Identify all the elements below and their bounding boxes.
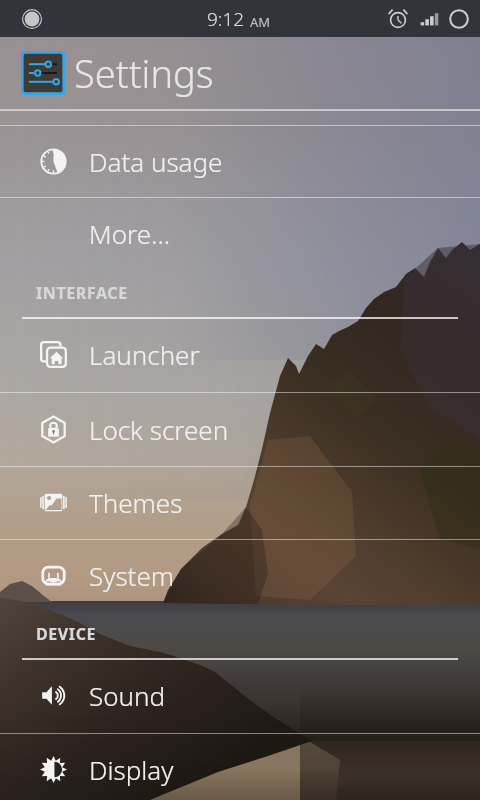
- staticText: Settings: [74, 47, 214, 99]
- button[interactable]: Lock screen: [0, 392, 480, 466]
- button[interactable]: System: [0, 539, 480, 612]
- staticText: Sound: [89, 678, 166, 713]
- button[interactable]: Data usage: [0, 125, 480, 198]
- staticText: INTERFACE: [36, 282, 128, 304]
- staticText: Launcher: [89, 337, 200, 372]
- button[interactable]: More...: [0, 197, 480, 270]
- staticText: AM: [250, 13, 271, 31]
- staticText: System: [89, 558, 174, 593]
- staticText: 9:12: [207, 6, 245, 32]
- button[interactable]: Display: [0, 733, 480, 800]
- button[interactable]: Launcher: [0, 317, 480, 392]
- staticText: Lock screen: [89, 412, 229, 447]
- button[interactable]: Sound: [0, 658, 480, 733]
- staticText: More...: [89, 216, 171, 251]
- staticText: Data usage: [89, 144, 223, 179]
- staticText: Display: [89, 752, 174, 787]
- staticText: DEVICE: [36, 623, 97, 645]
- button[interactable]: Themes: [0, 466, 480, 539]
- staticText: Themes: [89, 485, 183, 520]
